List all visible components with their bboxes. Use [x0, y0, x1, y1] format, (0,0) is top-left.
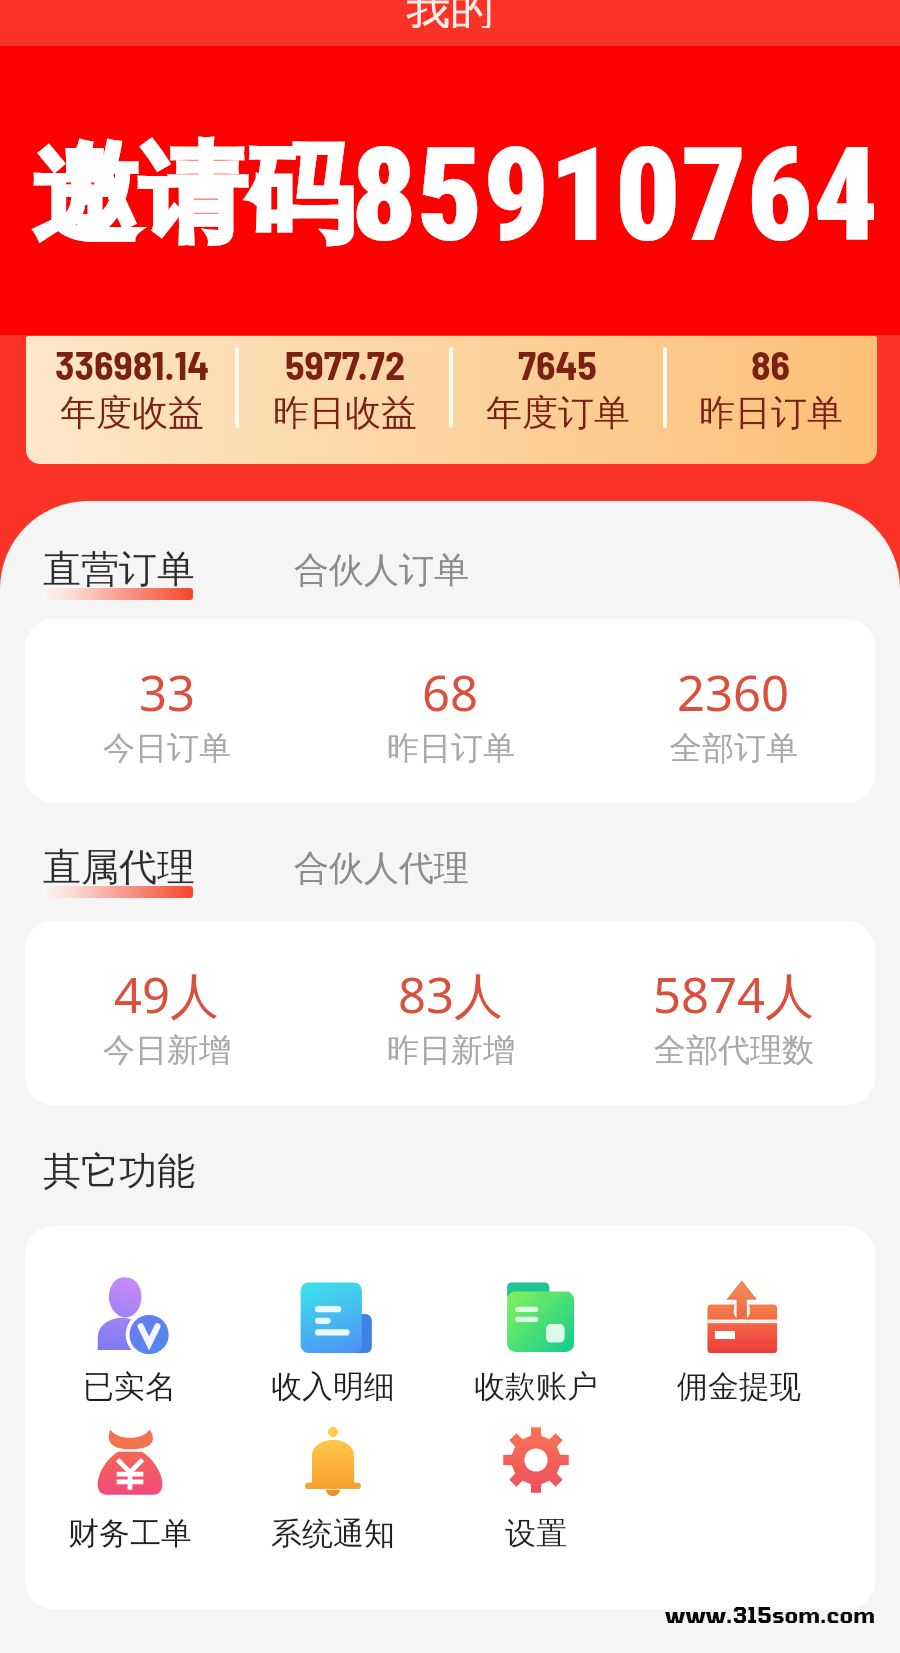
staticText: 邀请码	[32, 128, 353, 263]
button[interactable]: Income details	[231, 1270, 434, 1406]
staticText: 收款账户	[474, 1367, 598, 1406]
button[interactable]: 2360	[592, 626, 875, 803]
staticText: 合伙人订单	[294, 548, 469, 592]
staticText: 昨日订单	[387, 728, 515, 768]
staticText: 全部订单	[670, 728, 798, 768]
other: Finance ticket	[87, 1417, 173, 1503]
staticText: 直属代理	[43, 843, 195, 891]
staticText: 33	[139, 659, 196, 726]
staticText: 我的	[406, 0, 494, 28]
button[interactable]: 7645	[451, 336, 664, 464]
staticText: 设置	[505, 1514, 567, 1553]
button[interactable]: 5874人	[592, 928, 875, 1105]
button[interactable]: Notifications	[231, 1417, 434, 1553]
button[interactable]: Verified	[28, 1270, 231, 1406]
button[interactable]: 49人	[25, 928, 309, 1105]
button[interactable]: Payment account	[434, 1270, 637, 1406]
button[interactable]: 86	[664, 336, 877, 464]
staticText: 年度订单	[486, 390, 630, 435]
staticText: 83人	[398, 961, 504, 1028]
other: Settings	[493, 1417, 579, 1503]
staticText: 336981.14	[55, 340, 209, 388]
staticText: 直营订单	[43, 545, 195, 593]
staticText: 财务工单	[68, 1514, 192, 1553]
staticText: 49人	[114, 961, 220, 1028]
staticText: 年度收益	[60, 390, 204, 435]
button[interactable]: 邀请码	[0, 46, 900, 335]
other: Payment account	[493, 1270, 579, 1356]
button[interactable]: 33	[25, 626, 309, 803]
button[interactable]: Settings	[434, 1417, 637, 1553]
button[interactable]: 5977.72	[238, 336, 451, 464]
button[interactable]: 336981.14	[26, 336, 238, 464]
staticText: 其它功能	[43, 1147, 195, 1195]
other: Notifications	[290, 1417, 376, 1503]
other: Income details	[290, 1270, 376, 1356]
button[interactable]: Finance ticket	[28, 1417, 231, 1553]
staticText: 昨日收益	[273, 390, 417, 435]
staticText: 合伙人代理	[294, 846, 469, 890]
staticText: 86	[751, 340, 791, 388]
staticText: 85910764	[351, 120, 879, 271]
staticText: www.315som.com	[665, 1602, 876, 1627]
staticText: 5874人	[653, 961, 815, 1028]
button[interactable]: 直营订单	[43, 545, 195, 605]
staticText: 今日订单	[103, 728, 231, 768]
staticText: 系统通知	[271, 1514, 395, 1553]
staticText: 今日新增	[103, 1030, 231, 1070]
button[interactable]: 直属代理	[43, 843, 195, 903]
button[interactable]: 83人	[309, 928, 592, 1105]
staticText: 5977.72	[285, 340, 405, 388]
staticText: 已实名	[83, 1367, 176, 1406]
button[interactable]: Withdraw commission	[637, 1270, 840, 1406]
staticText: 昨日新增	[387, 1030, 515, 1070]
button[interactable]: 68	[309, 626, 592, 803]
staticText: 佣金提现	[677, 1367, 801, 1406]
other: Verified	[87, 1270, 173, 1356]
staticText: 全部代理数	[654, 1030, 814, 1070]
button[interactable]: 合伙人订单	[294, 545, 469, 589]
staticText: 68	[422, 659, 479, 726]
staticText: 昨日订单	[699, 390, 843, 435]
staticText: 2360	[677, 659, 790, 726]
staticText: 7645	[518, 340, 597, 388]
staticText: 收入明细	[271, 1367, 395, 1406]
button[interactable]: 合伙人代理	[294, 843, 469, 887]
other: Withdraw commission	[696, 1270, 782, 1356]
